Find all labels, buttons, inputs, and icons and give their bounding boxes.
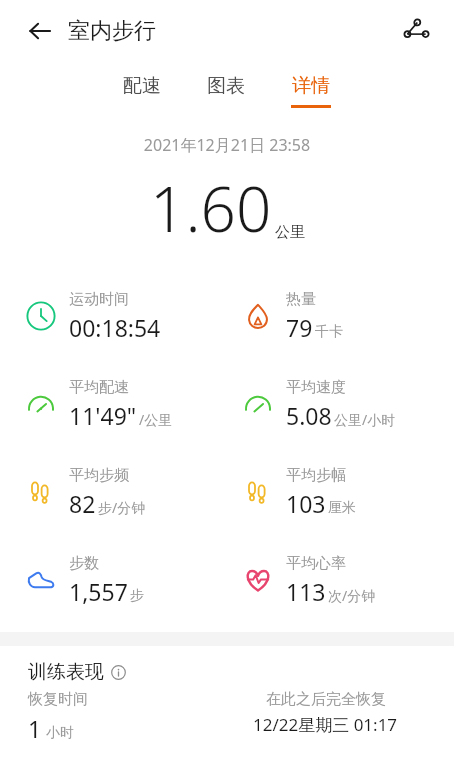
button[interactable]: 平均速度 xyxy=(227,360,454,448)
staticText: 5.08 xyxy=(286,400,332,431)
staticText: 运动时间 xyxy=(69,290,129,309)
staticText: 热量 xyxy=(286,290,316,309)
staticText: 11'49" xyxy=(69,400,137,431)
staticText: 79 xyxy=(286,312,313,343)
staticText: 训练表现 xyxy=(28,660,104,684)
staticText: 00:18:54 xyxy=(69,312,161,343)
button[interactable]: 平均配速 xyxy=(0,360,227,448)
staticText: 平均步频 xyxy=(69,466,129,485)
staticText: 步数 xyxy=(69,554,99,573)
staticText: 平均步幅 xyxy=(286,466,346,485)
staticText: 103 xyxy=(286,488,326,519)
staticText: 厘米 xyxy=(328,499,356,517)
button[interactable]: 配速 xyxy=(117,72,167,110)
staticText: 113 xyxy=(286,576,326,607)
staticText: 12/22星期三 01:17 xyxy=(253,713,398,736)
staticText: 平均心率 xyxy=(286,554,346,573)
button[interactable]: 平均心率 xyxy=(227,536,454,624)
button[interactable]: 步数 xyxy=(0,536,227,624)
button[interactable]: 平均步幅 xyxy=(227,448,454,536)
staticText: 千卡 xyxy=(315,323,343,341)
staticText: 步/分钟 xyxy=(98,498,146,517)
button[interactable]: 详情 xyxy=(285,72,337,110)
staticText: 图表 xyxy=(207,74,245,98)
staticText: 次/分钟 xyxy=(328,586,376,605)
staticText: 82 xyxy=(69,488,96,519)
staticText: 公里 xyxy=(275,223,305,242)
staticText: 1 xyxy=(28,713,42,744)
staticText: 1.60 xyxy=(150,166,272,250)
staticText: 在此之后完全恢复 xyxy=(266,690,386,709)
button[interactable]: 平均步频 xyxy=(0,448,227,536)
staticText: 平均速度 xyxy=(286,378,346,397)
button[interactable]: Back xyxy=(20,11,60,51)
staticText: 详情 xyxy=(292,74,330,98)
staticText: 1,557 xyxy=(69,576,128,607)
staticText: 恢复时间 xyxy=(28,690,88,709)
other: Info xyxy=(111,665,126,680)
staticText: 步 xyxy=(130,587,144,605)
button[interactable]: 热量 xyxy=(227,272,454,360)
staticText: 室内步行 xyxy=(68,17,156,45)
staticText: 2021年12月21日 23:58 xyxy=(0,134,454,156)
staticText: 公里/小时 xyxy=(334,410,396,429)
staticText: 平均配速 xyxy=(69,378,129,397)
staticText: /公里 xyxy=(139,410,173,429)
button[interactable]: Share xyxy=(396,11,436,51)
button[interactable]: 训练表现 xyxy=(28,660,126,684)
button[interactable]: 图表 xyxy=(201,72,251,110)
staticText: 配速 xyxy=(123,74,161,98)
button[interactable]: 运动时间 xyxy=(0,272,227,360)
staticText: 小时 xyxy=(46,724,74,742)
